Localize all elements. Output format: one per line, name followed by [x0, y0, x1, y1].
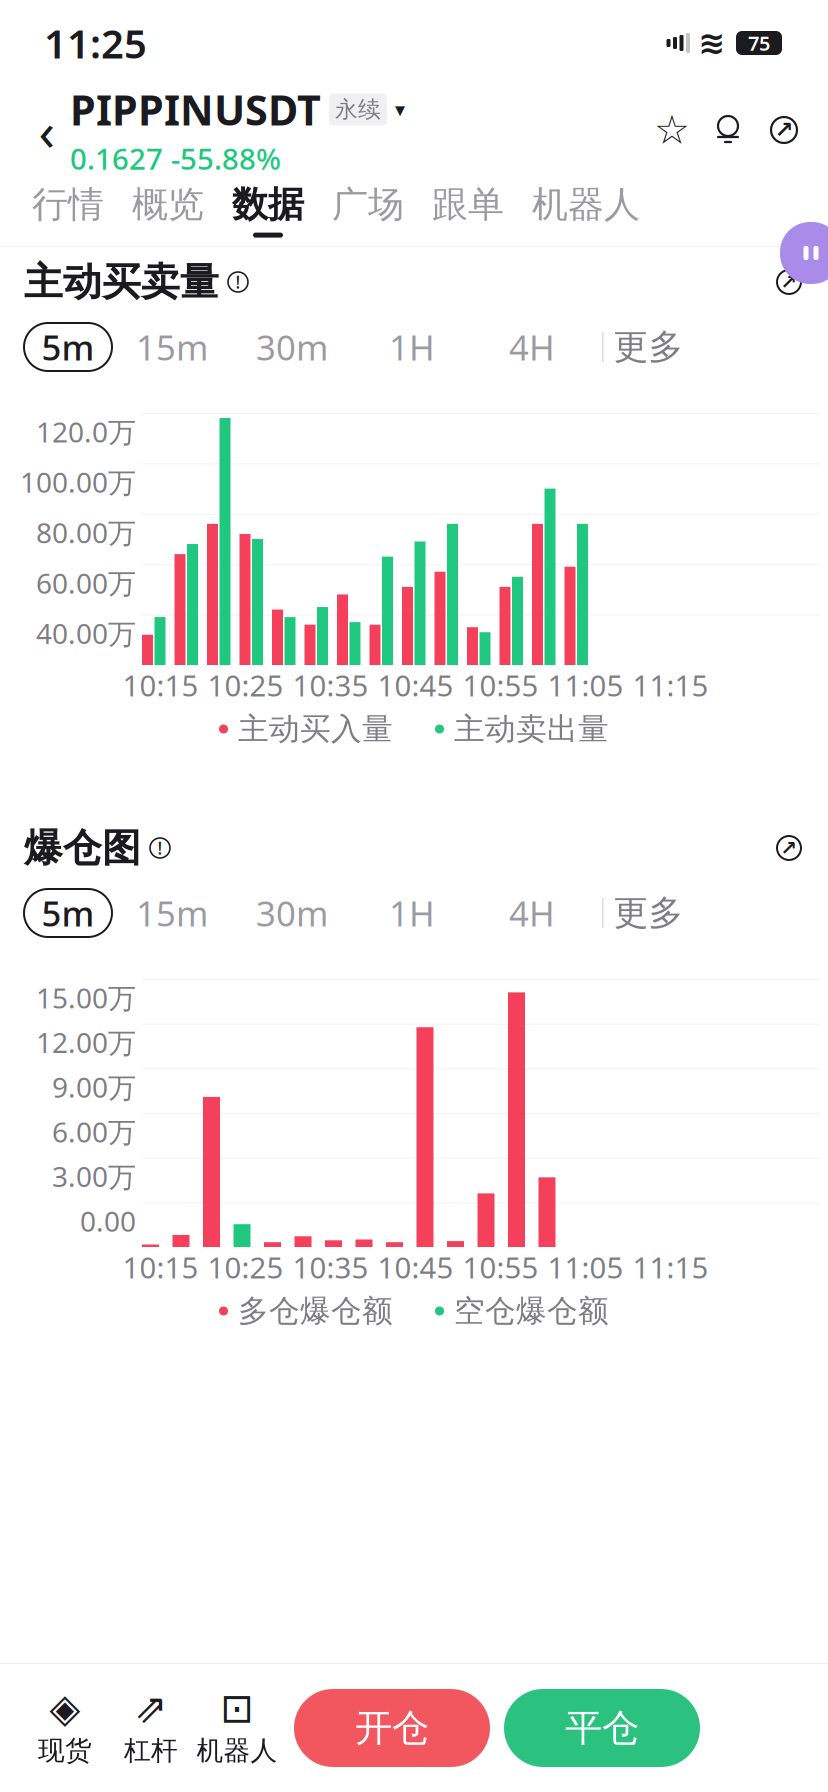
- button[interactable]: ⇗: [108, 1686, 194, 1770]
- staticText: 11:05: [547, 1247, 623, 1286]
- button[interactable]: Back: [24, 100, 70, 160]
- staticText: ↗: [780, 271, 797, 293]
- staticText: 数据: [232, 182, 304, 227]
- staticText: 40.00万: [36, 615, 136, 652]
- staticText: !: [157, 836, 162, 859]
- staticText: 现货: [38, 1734, 92, 1767]
- staticText: 80.00万: [36, 514, 136, 551]
- button[interactable]: 15m: [112, 323, 232, 371]
- staticText: ☆: [654, 107, 690, 153]
- staticText: 3.00万: [52, 1158, 136, 1195]
- button[interactable]: 30m: [232, 323, 352, 371]
- button[interactable]: 5m: [24, 323, 112, 371]
- staticText: 广场: [332, 182, 404, 227]
- staticText: ≋: [698, 25, 725, 61]
- button[interactable]: 更多: [613, 889, 683, 937]
- staticText: 更多: [613, 326, 683, 368]
- staticText: PIPPINUSDT: [70, 82, 321, 137]
- button[interactable]: 1H: [352, 323, 472, 371]
- button[interactable]: 行情: [18, 174, 118, 246]
- staticText: 10:25: [207, 665, 283, 704]
- staticText: 更多: [613, 892, 683, 934]
- staticText: 10:55: [462, 665, 538, 704]
- button[interactable]: 广场: [318, 174, 418, 246]
- staticText: 11:25: [44, 16, 147, 69]
- staticText: 机器人: [532, 182, 640, 227]
- staticText: 永续: [335, 96, 381, 123]
- staticText: 10:35: [292, 665, 368, 704]
- staticText: 9.00万: [52, 1068, 136, 1105]
- staticText: 5m: [41, 890, 94, 936]
- staticText: 10:45: [377, 665, 453, 704]
- staticText: 4H: [509, 890, 555, 936]
- button[interactable]: 4H: [472, 323, 592, 371]
- staticText: ▾: [395, 98, 405, 121]
- button[interactable]: 15m: [112, 889, 232, 937]
- button[interactable]: ◈: [22, 1686, 108, 1770]
- button[interactable]: 概览: [118, 174, 218, 246]
- button[interactable]: 30m: [232, 889, 352, 937]
- button[interactable]: Assistant: [780, 222, 828, 284]
- staticText: 5m: [41, 324, 94, 370]
- staticText: 10:15: [122, 665, 198, 704]
- staticText: !: [235, 270, 240, 293]
- button[interactable]: PIPPINUSDT: [70, 82, 405, 178]
- staticText: 120.0万: [36, 413, 136, 450]
- staticText: 1H: [389, 324, 435, 370]
- staticText: 4H: [509, 324, 555, 370]
- staticText: 爆仓图: [24, 824, 141, 872]
- button[interactable]: 平仓: [504, 1689, 700, 1767]
- staticText: ◈: [49, 1685, 80, 1731]
- button[interactable]: Favorite: [652, 110, 692, 150]
- staticText: 1H: [389, 890, 435, 936]
- staticText: 多仓爆仓额: [238, 1292, 393, 1330]
- button[interactable]: 更多: [613, 323, 683, 371]
- staticText: 75: [748, 30, 770, 56]
- staticText: 11:15: [632, 1247, 708, 1286]
- staticText: ↗: [774, 117, 793, 143]
- button[interactable]: Alerts: [708, 110, 748, 150]
- staticText: 主动买入量: [238, 710, 393, 748]
- staticText: ‹: [38, 95, 55, 165]
- staticText: 6.00万: [52, 1113, 136, 1150]
- staticText: 15.00万: [36, 979, 136, 1016]
- staticText: 开仓: [355, 1705, 429, 1751]
- staticText: 概览: [132, 182, 204, 227]
- button[interactable]: 5m: [24, 889, 112, 937]
- button[interactable]: 数据: [218, 174, 318, 246]
- button[interactable]: Expand 爆仓图: [774, 833, 804, 863]
- button[interactable]: 机器人: [518, 174, 654, 246]
- staticText: 30m: [256, 890, 328, 936]
- staticText: 30m: [256, 324, 328, 370]
- button[interactable]: ⊡: [194, 1686, 280, 1770]
- button[interactable]: 1H: [352, 889, 472, 937]
- staticText: 10:25: [207, 1247, 283, 1286]
- staticText: 平仓: [565, 1705, 639, 1751]
- staticText: 0.00: [80, 1202, 136, 1239]
- button[interactable]: Share: [764, 110, 804, 150]
- button[interactable]: 跟单: [418, 174, 518, 246]
- button[interactable]: 开仓: [294, 1689, 490, 1767]
- staticText: ⊡: [220, 1685, 254, 1731]
- button[interactable]: 4H: [472, 889, 592, 937]
- staticText: 15m: [136, 324, 208, 370]
- staticText: 主动卖出量: [454, 710, 609, 748]
- staticText: 11:05: [547, 665, 623, 704]
- staticText: 10:55: [462, 1247, 538, 1286]
- staticText: 空仓爆仓额: [454, 1292, 609, 1330]
- staticText: 60.00万: [36, 564, 136, 601]
- staticText: 行情: [32, 182, 104, 227]
- staticText: 机器人: [196, 1734, 277, 1767]
- staticText: 12.00万: [36, 1024, 136, 1061]
- staticText: 主动买卖量: [24, 258, 219, 306]
- staticText: 10:35: [292, 1247, 368, 1286]
- staticText: 100.00万: [20, 463, 136, 501]
- staticText: 10:15: [122, 1247, 198, 1286]
- staticText: 杠杆: [124, 1734, 178, 1767]
- button[interactable]: Expand 主动买卖量: [774, 267, 804, 297]
- staticText: 跟单: [432, 182, 504, 227]
- staticText: 0.1627 -55.88%: [70, 139, 281, 178]
- staticText: ↗: [780, 837, 797, 859]
- staticText: ⇗: [134, 1685, 168, 1731]
- staticText: 15m: [136, 890, 208, 936]
